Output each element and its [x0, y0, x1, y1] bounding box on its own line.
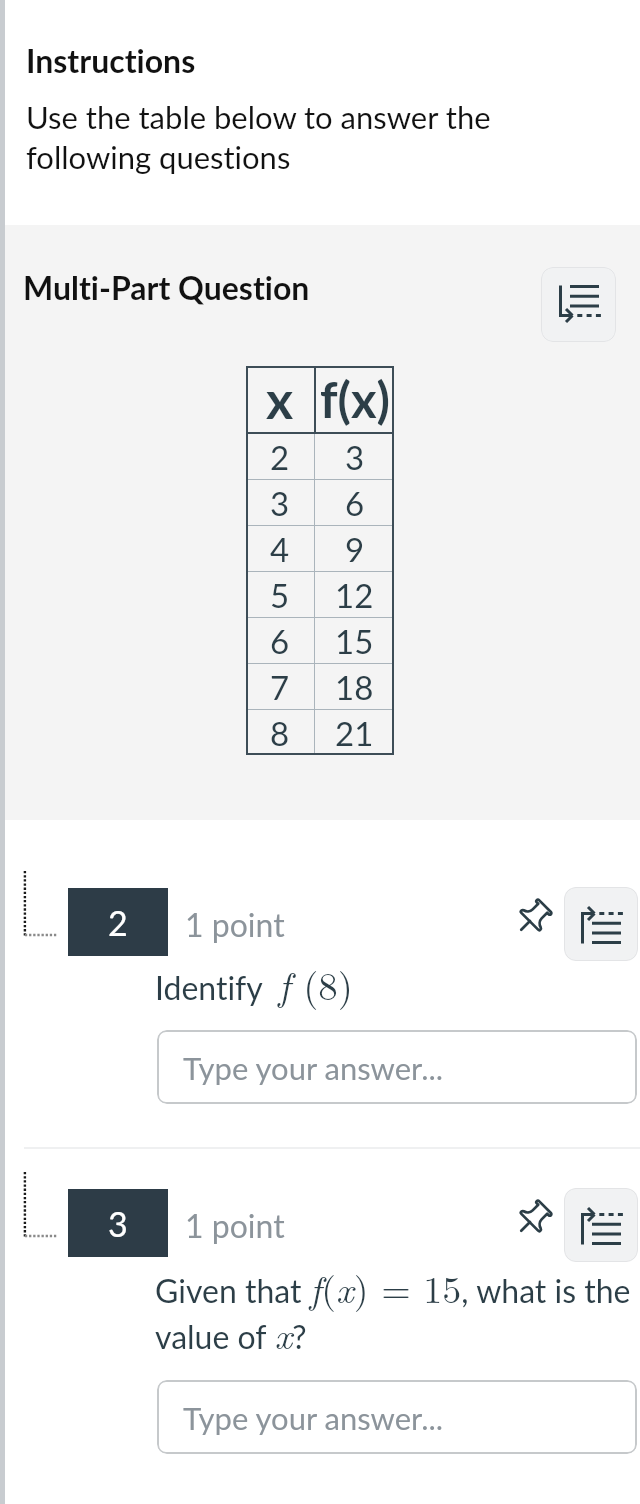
- staticText: Given that f(x) = 15, what is the value …: [155, 1260, 640, 1360]
- staticText: 12: [335, 575, 374, 615]
- staticText: Instructions: [26, 41, 196, 79]
- staticText: Identify f (8): [155, 956, 353, 1011]
- staticText: 6: [270, 621, 290, 661]
- staticText: Multi-Part Question: [23, 268, 310, 306]
- staticText: 2: [270, 437, 290, 477]
- staticText: 15: [335, 621, 374, 661]
- button[interactable]: Type your answer...: [157, 1380, 637, 1454]
- staticText: 3: [270, 483, 290, 523]
- button[interactable]: Expand question: [564, 1188, 638, 1262]
- staticText: 1 point: [185, 1206, 285, 1244]
- staticText: 8: [270, 713, 290, 753]
- button[interactable]: Pin question: [506, 889, 562, 945]
- staticText: 2: [108, 902, 128, 943]
- staticText: 4: [270, 529, 290, 569]
- staticText: 21: [335, 713, 374, 753]
- button[interactable]: Pin question: [506, 1190, 562, 1246]
- staticText: 5: [270, 575, 290, 615]
- staticText: 6: [345, 483, 365, 523]
- staticText: 9: [345, 529, 365, 569]
- button[interactable]: Expand question: [564, 887, 638, 961]
- button[interactable]: 3: [68, 1189, 168, 1257]
- staticText: Use the table below to answer the follow…: [26, 98, 491, 176]
- staticText: 7: [270, 667, 290, 707]
- button[interactable]: Type your answer...: [157, 1030, 637, 1104]
- staticText: f(x): [320, 370, 391, 429]
- staticText: 1 point: [185, 905, 285, 943]
- staticText: x: [266, 368, 294, 430]
- staticText: 3: [108, 1203, 128, 1244]
- staticText: Type your answer...: [183, 1049, 444, 1086]
- staticText: 18: [335, 667, 374, 707]
- button[interactable]: 2: [68, 888, 168, 956]
- button[interactable]: Collapse question: [541, 267, 616, 342]
- staticText: Type your answer...: [183, 1399, 444, 1436]
- staticText: 3: [345, 437, 365, 477]
